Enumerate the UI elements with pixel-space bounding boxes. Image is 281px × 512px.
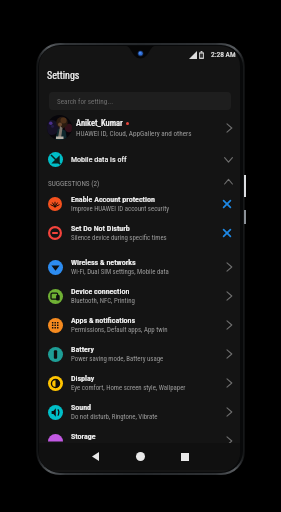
button[interactable]: Battery [39,340,240,368]
button[interactable]: Back [80,443,110,470]
button[interactable]: Storage [39,427,240,455]
staticText: Apps & notifications [71,316,136,325]
button[interactable]: Recent apps [170,443,200,470]
button[interactable]: Enable Account protection [39,190,240,218]
staticText: Aniket_Kumar [76,118,123,128]
button[interactable]: Dismiss suggestion [218,195,236,213]
staticText: Battery [71,345,94,354]
staticText: SUGGESTIONS (2) [48,179,100,187]
staticText: Sound [71,403,92,412]
staticText: Permissions, Default apps, App twin [71,326,168,334]
button[interactable]: Apps & notifications [39,311,240,339]
staticText: Settings [47,70,80,82]
staticText: HUAWEI ID, Cloud, AppGallery and others [76,129,192,137]
button[interactable]: Aniket_Kumar [39,113,240,142]
staticText: Silence device during specific times [71,234,167,242]
staticText: Mobile data is off [71,155,127,164]
staticText: Do not disturb, Ringtone, Vibrate [71,413,158,421]
button[interactable]: Display [39,369,240,397]
staticText: Eye comfort, Home screen style, Wallpape… [71,384,186,392]
staticText: Search for setting... [57,97,114,105]
staticText: Wi-Fi, Dual SIM settings, Mobile data [71,268,169,276]
button[interactable]: Mobile data is off [39,146,240,173]
staticText: Device connection [71,287,130,296]
button[interactable]: Home [125,443,155,470]
button[interactable]: Wireless & networks [39,253,240,281]
button[interactable]: Sound [39,398,240,426]
staticText: Enable Account protection [71,195,155,204]
staticText: Set Do Not Disturb [71,224,130,233]
staticText: 2:28 AM [211,50,236,59]
button[interactable]: Set Do Not Disturb [39,219,240,247]
staticText: Improve HUAWEI ID account security [71,205,170,213]
staticText: Wireless & networks [71,258,136,267]
staticText: Display [71,374,95,383]
staticText: Storage [71,432,96,441]
button[interactable]: Dismiss suggestion [218,224,236,242]
staticText: Power saving mode, Battery usage [71,355,164,363]
staticText: Bluetooth, NFC, Printing [71,297,135,305]
button[interactable]: Search for setting... [49,92,231,110]
button[interactable]: Device connection [39,282,240,310]
